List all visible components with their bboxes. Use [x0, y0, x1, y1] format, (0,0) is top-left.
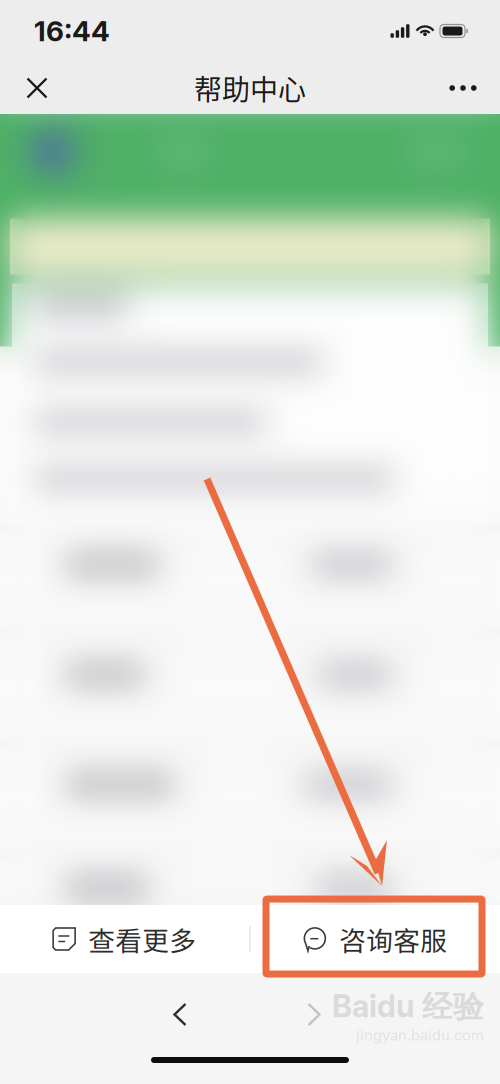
button[interactable]: 关闭 [14, 65, 60, 111]
button[interactable]: 查看更多 [0, 905, 249, 973]
button[interactable]: 咨询客服 [251, 905, 500, 973]
staticText: Baidu 经验 [332, 987, 484, 1026]
staticText: 帮助中心 [194, 68, 306, 108]
button[interactable]: 更多 [440, 65, 486, 111]
staticText: 查看更多 [88, 920, 196, 958]
staticText: jingyan.baidu.com [356, 1026, 484, 1044]
button[interactable]: 前进 [290, 990, 338, 1038]
staticText: 16:44 [34, 14, 110, 48]
staticText: 咨询客服 [339, 920, 447, 958]
button[interactable]: 后退 [156, 990, 204, 1038]
